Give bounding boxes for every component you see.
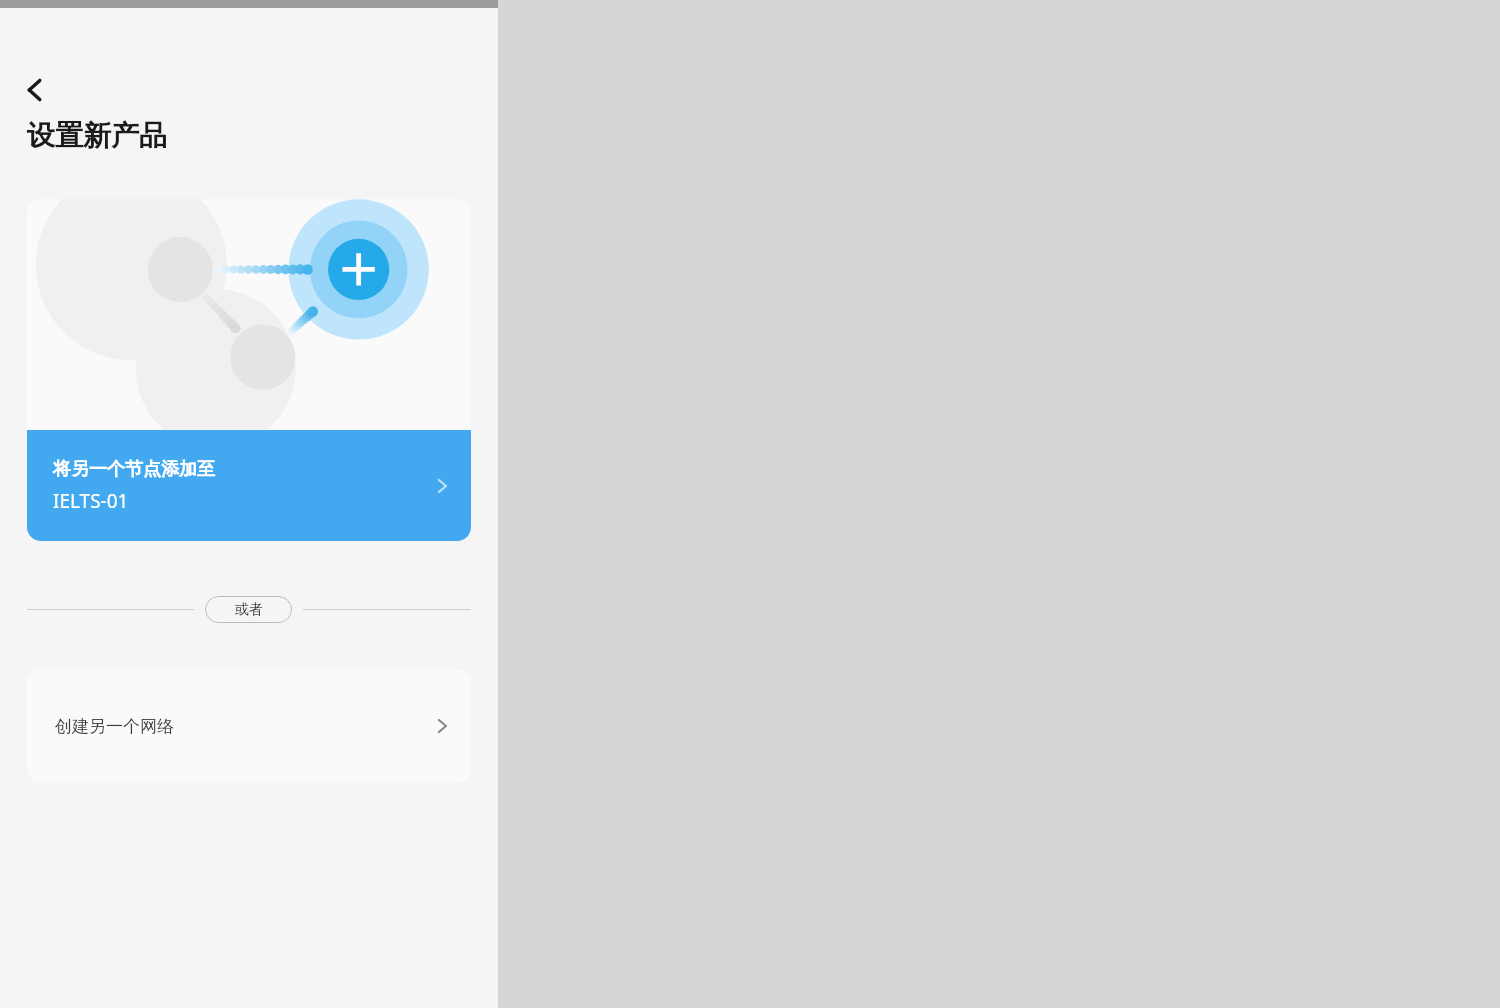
staticText: 创建另一个网络 bbox=[55, 716, 174, 737]
button[interactable]: 将另一个节点添加至 bbox=[27, 199, 471, 541]
staticText: IELTS-01 bbox=[53, 488, 129, 514]
staticText: 将另一个节点添加至 bbox=[53, 458, 215, 481]
button[interactable]: 或者 bbox=[205, 596, 292, 623]
button[interactable]: 创建另一个网络 bbox=[27, 669, 471, 783]
staticText: 设置新产品 bbox=[27, 118, 167, 153]
button[interactable]: Back bbox=[13, 68, 57, 112]
staticText: 或者 bbox=[235, 601, 263, 619]
